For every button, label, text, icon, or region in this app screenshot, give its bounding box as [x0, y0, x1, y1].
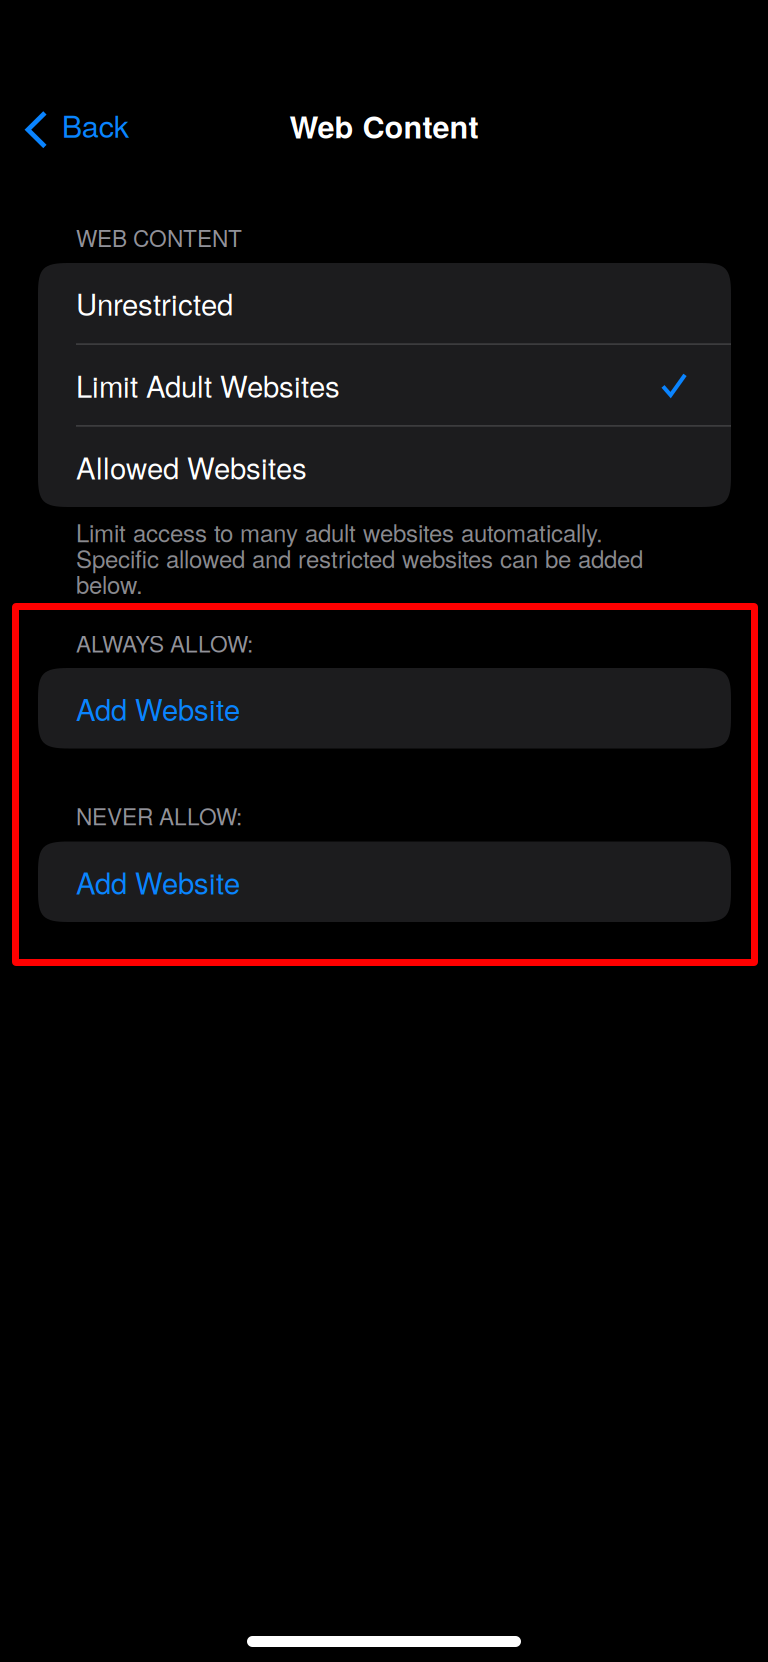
staticText: Limit access to many adult websites auto…: [76, 515, 603, 549]
staticText: Specific allowed and restricted websites…: [76, 541, 643, 575]
button[interactable]: Allowed Websites: [38, 427, 731, 507]
staticText: Web Content: [289, 104, 478, 148]
button[interactable]: Limit Adult Websites: [38, 345, 731, 425]
button[interactable]: Add Website: [38, 841, 731, 922]
button[interactable]: Back: [0, 93, 151, 155]
staticText: Add Website: [76, 687, 240, 729]
staticText: Allowed Websites: [76, 446, 307, 488]
button[interactable]: Unrestricted: [38, 263, 731, 343]
staticText: Add Website: [76, 861, 240, 903]
staticText: WEB CONTENT: [76, 221, 242, 253]
staticText: ALWAYS ALLOW:: [76, 627, 253, 659]
staticText: Unrestricted: [76, 282, 233, 324]
staticText: below.: [76, 566, 143, 601]
staticText: NEVER ALLOW:: [76, 799, 242, 832]
staticText: Back: [62, 102, 129, 146]
button[interactable]: Add Website: [38, 668, 731, 748]
staticText: Limit Adult Websites: [76, 364, 340, 406]
